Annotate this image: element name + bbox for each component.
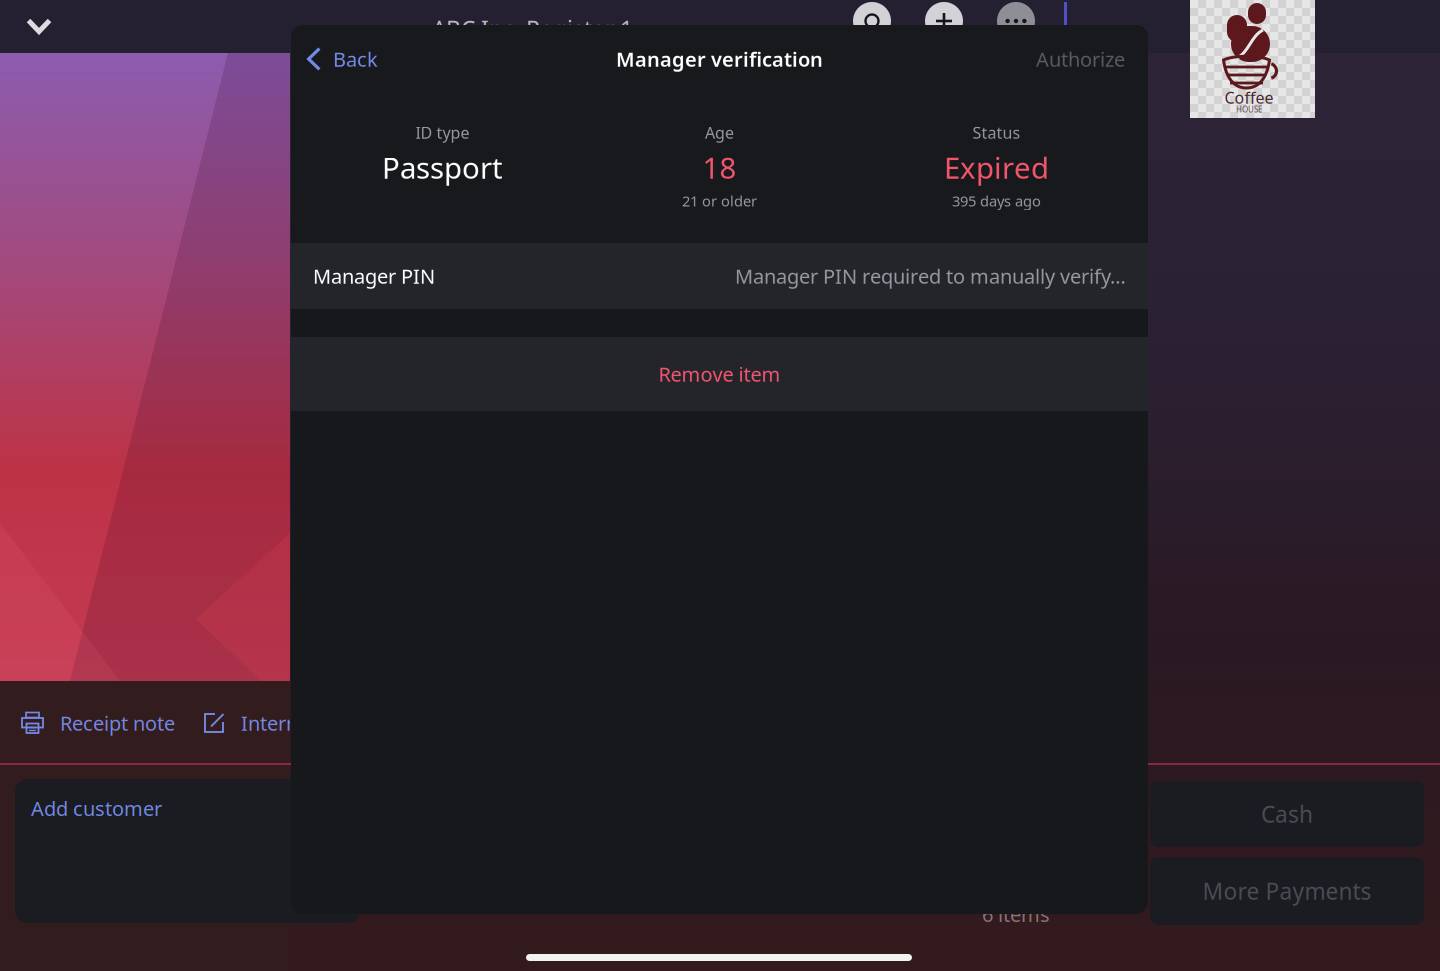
button[interactable]: Search [853, 2, 891, 40]
button[interactable]: Internal note [203, 682, 361, 764]
button[interactable]: Remove item [291, 337, 1148, 411]
staticText: 6 items [982, 901, 1050, 928]
staticText: ABC Inc. Register 1 [432, 14, 633, 44]
button[interactable]: Add customer [15, 779, 360, 923]
staticText: Manager verification [616, 46, 823, 72]
staticText: Cash [1261, 799, 1313, 829]
button[interactable]: Add [925, 2, 963, 40]
staticText: Age [705, 122, 734, 143]
staticText: Passport [382, 148, 503, 187]
staticText: HOUSE [1236, 104, 1262, 115]
button[interactable]: Manager PIN [291, 243, 1148, 309]
staticText: Manager PIN required to manually verify… [735, 263, 1126, 289]
button[interactable]: More [997, 2, 1035, 40]
button[interactable]: More Payments [1150, 857, 1424, 925]
button[interactable]: Authorize [1013, 25, 1148, 93]
staticText: 18 [702, 148, 736, 187]
staticText: Receipt note [60, 710, 175, 736]
staticText: Authorize [1036, 46, 1125, 72]
button[interactable]: Cash [1150, 781, 1424, 847]
staticText: Remove item [658, 361, 780, 387]
staticText: ID type [415, 122, 469, 143]
staticText: 21 or older [682, 191, 757, 210]
staticText: Manager PIN [313, 263, 435, 289]
button[interactable]: Collapse [13, 0, 65, 52]
button[interactable]: Receipt note [21, 682, 175, 764]
staticText: Expired [944, 148, 1049, 187]
staticText: Add customer [31, 795, 162, 822]
staticText: Status [972, 122, 1020, 143]
staticText: More Payments [1202, 876, 1371, 906]
button[interactable]: Back [291, 25, 392, 93]
staticText: Back [333, 46, 378, 72]
staticText: 395 days ago [952, 191, 1041, 210]
staticText: Internal note [241, 710, 361, 736]
staticText: Coffee [1224, 87, 1273, 108]
